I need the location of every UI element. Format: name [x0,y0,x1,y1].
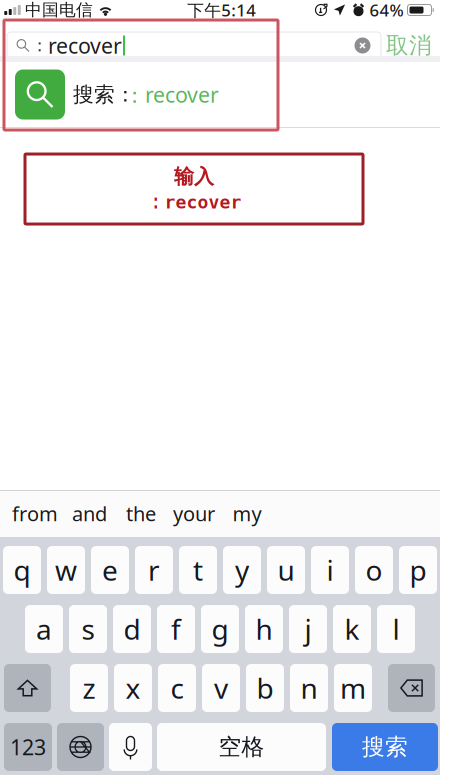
button[interactable]: g [201,605,239,653]
staticText: s [81,610,94,648]
button[interactable]: y [223,546,261,594]
staticText: your [173,500,215,527]
staticText: from [12,500,58,527]
staticText: a [36,610,52,648]
staticText: h [255,610,272,648]
staticText: f [171,610,181,648]
staticText: x [125,669,140,707]
button[interactable]: m [334,664,372,712]
button[interactable]: Dictate [109,723,152,771]
button[interactable]: and [64,490,115,537]
button[interactable]: w [47,546,85,594]
button[interactable]: my [221,490,273,537]
staticText: 搜索： [73,81,136,107]
button[interactable]: o [355,546,393,594]
staticText: b [256,669,273,707]
staticText: 64% [369,0,403,21]
staticText: and [72,500,107,527]
staticText: g [211,610,228,648]
staticText: r [148,551,160,589]
button[interactable]: l [377,605,415,653]
button[interactable]: 取消 [381,28,437,63]
button[interactable]: d [113,605,151,653]
staticText: ：recover [124,80,219,109]
button[interactable]: t [179,546,217,594]
button[interactable]: n [290,664,328,712]
staticText: 空格 [218,733,264,761]
staticText: p [409,551,426,589]
button[interactable]: Clear text [354,37,381,54]
button[interactable]: j [289,605,327,653]
staticText: d [123,610,140,648]
button[interactable]: p [399,546,437,594]
button[interactable]: from [6,490,64,537]
staticText: 取消 [386,31,432,60]
button[interactable]: u [267,546,305,594]
staticText: l [392,610,399,648]
button[interactable]: i [311,546,349,594]
button[interactable]: q [3,546,41,594]
staticText: q [13,551,30,589]
button[interactable]: v [202,664,240,712]
button[interactable]: 空格 [157,723,326,771]
button[interactable]: c [158,664,196,712]
staticText: v [214,669,228,707]
button[interactable]: b [246,664,284,712]
staticText: 123 [10,732,46,762]
staticText: i [326,551,333,589]
button[interactable]: 搜索 [332,723,438,771]
staticText: recover [48,31,122,60]
button[interactable]: z [70,664,108,712]
button[interactable]: x [114,664,152,712]
staticText: j [304,610,311,648]
button[interactable]: your [167,490,221,537]
button[interactable]: f [157,605,195,653]
staticText: 下午5:14 [187,0,256,21]
button[interactable]: h [245,605,283,653]
button[interactable]: Shift [4,664,51,712]
staticText: the [126,500,156,527]
staticText: w [55,551,77,589]
button[interactable]: a [25,605,63,653]
button[interactable]: Delete [388,664,435,712]
staticText: 搜索 [362,733,408,761]
button[interactable]: r [135,546,173,594]
staticText: z [82,669,95,707]
button[interactable]: 搜索： [0,62,440,127]
staticText: u [277,551,294,589]
staticText: ： [31,35,48,56]
button[interactable]: the [115,490,167,537]
staticText: o [365,551,382,589]
staticText: 中国电信 [25,0,93,20]
button[interactable]: 123 [4,723,52,771]
staticText: t [193,551,203,589]
staticText: n [300,669,317,707]
button[interactable]: k [333,605,371,653]
staticText: c [170,669,183,707]
staticText: 输入 [174,164,214,189]
staticText: my [232,500,261,527]
button[interactable]: s [69,605,107,653]
staticText: k [344,610,359,648]
staticText: y [235,551,249,589]
staticText: e [102,551,118,589]
staticText: ：recover [146,191,241,214]
staticText: m [340,669,366,707]
button[interactable]: Next keyboard [57,723,104,771]
button[interactable]: e [91,546,129,594]
